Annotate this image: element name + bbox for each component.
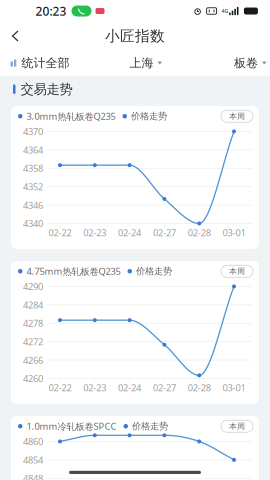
staticText: 4848 [23, 472, 43, 480]
staticText: 3.0mm热轧板卷Q235 [26, 110, 115, 122]
button[interactable]: Back [0, 23, 28, 49]
staticText: 02-22 [48, 381, 71, 394]
staticText: 4860 [23, 435, 43, 448]
staticText: 03-01 [222, 226, 245, 239]
button[interactable]: 本周 [221, 420, 253, 432]
staticText: 4340 [23, 217, 43, 230]
button[interactable]: 板卷 [224, 50, 270, 76]
staticText: 本周 [229, 111, 245, 121]
staticText: 价格走势 [132, 420, 168, 432]
staticText: 4370 [23, 125, 43, 138]
staticText: 价格走势 [131, 110, 167, 122]
staticText: 4260 [23, 372, 43, 385]
staticText: 20:23 [35, 3, 66, 19]
button[interactable]: 本周 [221, 110, 253, 122]
staticText: 本周 [229, 266, 245, 276]
staticText: 02-27 [153, 226, 176, 239]
staticText: 02-23 [83, 381, 106, 394]
staticText: 4G [222, 7, 229, 15]
staticText: 02-28 [188, 226, 211, 239]
staticText: 02-24 [118, 381, 141, 394]
staticText: 4272 [23, 335, 43, 348]
staticText: 4358 [23, 162, 43, 174]
button[interactable]: 本周 [221, 265, 253, 277]
staticText: 板卷 [234, 56, 258, 70]
staticText: 4352 [23, 180, 43, 193]
staticText: 统计全部 [21, 56, 69, 70]
staticText: 02-22 [48, 226, 71, 239]
staticText: 4284 [23, 299, 43, 311]
staticText: 4278 [23, 317, 43, 329]
staticText: 4266 [23, 354, 43, 366]
button[interactable]: 统计全部 [0, 50, 79, 76]
staticText: 4290 [23, 280, 43, 293]
staticText: 1.0mm冷轧板卷SPCC [26, 420, 116, 432]
button[interactable]: 上海 [119, 50, 172, 76]
staticText: 4364 [23, 144, 43, 156]
staticText: 03-01 [222, 381, 245, 394]
staticText: 4346 [23, 199, 43, 211]
staticText: 02-23 [83, 226, 106, 239]
staticText: 价格走势 [136, 265, 172, 277]
staticText: 4854 [23, 454, 43, 466]
staticText: 交易走势 [20, 81, 72, 97]
staticText: 02-28 [188, 381, 211, 394]
staticText: 02-27 [153, 381, 176, 394]
staticText: 4.75mm热轧板卷Q235 [26, 265, 120, 277]
staticText: 02-24 [118, 226, 141, 239]
staticText: 小匠指数 [105, 27, 165, 45]
staticText: 本周 [229, 421, 245, 431]
staticText: 上海 [129, 56, 153, 70]
